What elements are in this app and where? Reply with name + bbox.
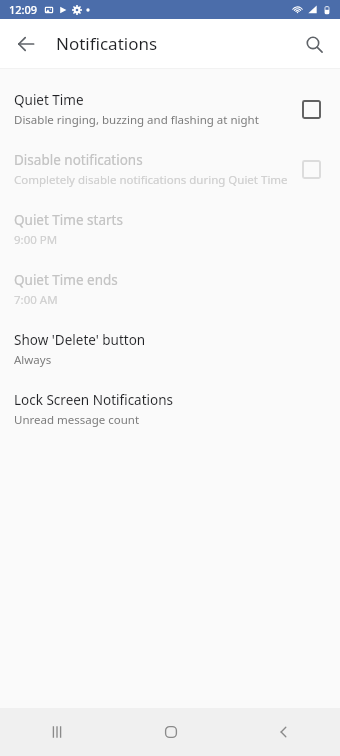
staticText: Lock Screen Notifications [14,391,174,409]
button[interactable]: Quiet Time ends [0,259,340,319]
staticText: Unread message count [14,412,140,428]
button[interactable]: Back [6,24,46,64]
staticText: 7:00 AM [14,292,58,308]
button[interactable]: Home [114,708,227,756]
staticText: 12:09 [9,2,38,17]
button[interactable]: Disable notifications [0,139,340,199]
button[interactable]: Disable notifications checkbox [296,154,326,184]
staticText: 9:00 PM [14,232,58,248]
staticText: Completely disable notifications during … [14,172,288,188]
staticText: Show 'Delete' button [14,331,146,349]
button[interactable]: Quiet Time [0,79,340,139]
staticText: Disable ringing, buzzing and flashing at… [14,112,259,128]
staticText: Notifications [56,32,158,55]
button[interactable]: Back [227,708,340,756]
button[interactable]: Search [294,24,334,64]
button[interactable]: Lock Screen Notifications [0,379,340,439]
staticText: Always [14,352,52,368]
button[interactable]: Quiet Time starts [0,199,340,259]
button[interactable]: Recents [0,708,114,756]
button[interactable]: Show 'Delete' button [0,319,340,379]
staticText: Quiet Time [14,91,84,109]
staticText: Quiet Time starts [14,211,123,229]
button[interactable]: Quiet Time checkbox [296,94,326,124]
staticText: Quiet Time ends [14,271,118,289]
staticText: Disable notifications [14,151,143,169]
